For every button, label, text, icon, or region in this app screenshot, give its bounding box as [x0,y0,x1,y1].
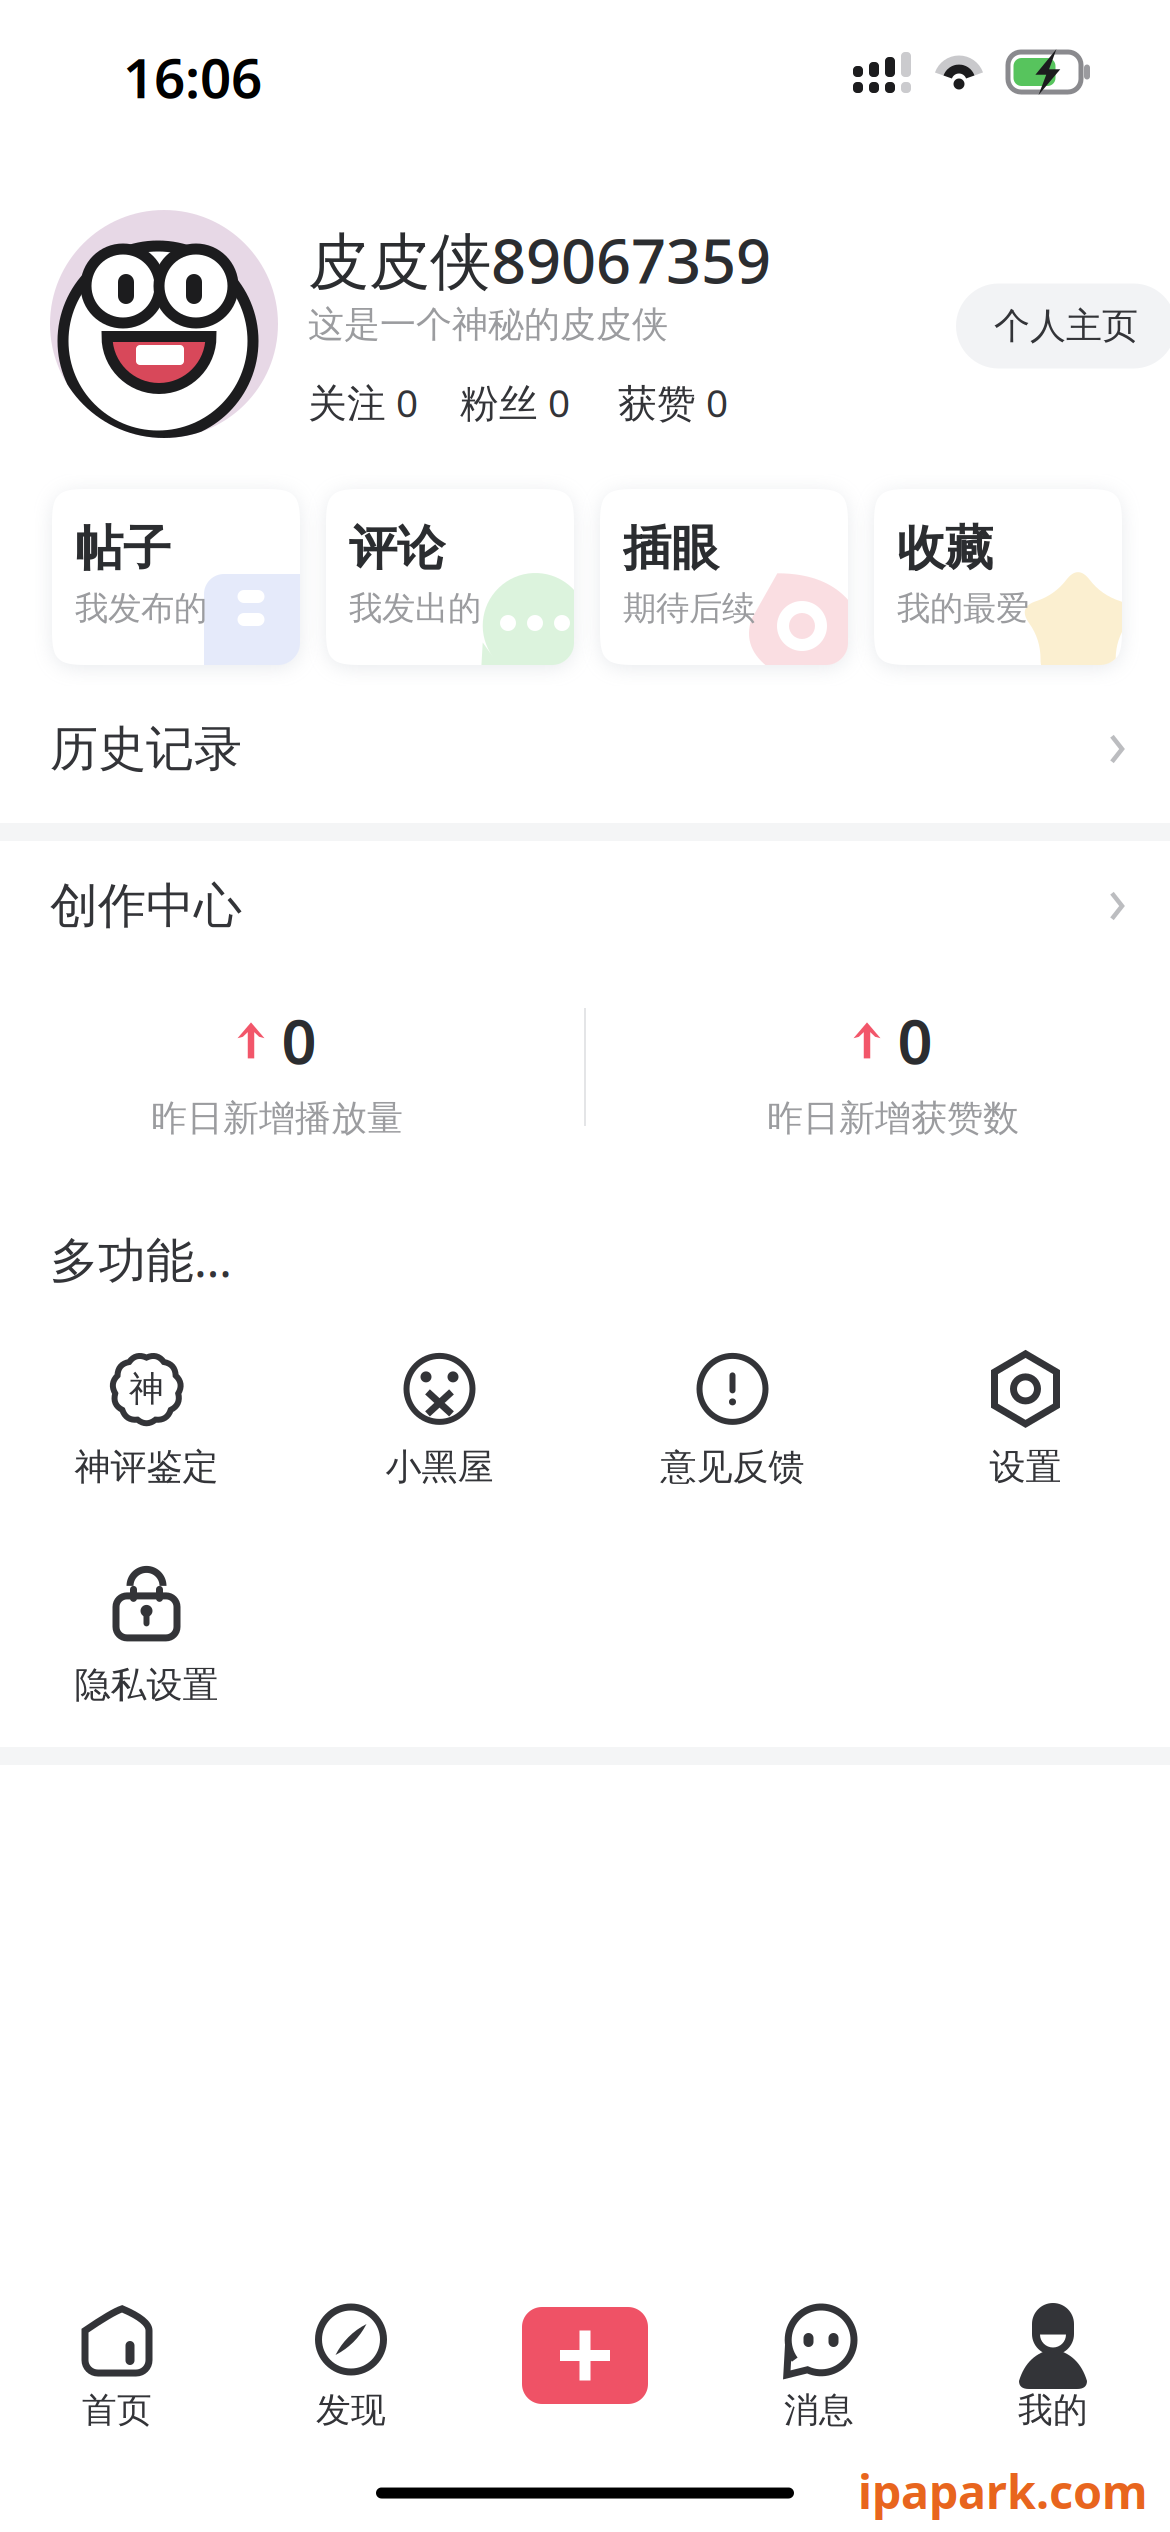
button[interactable]: 发布 [468,2306,702,2466]
staticText: ipapark.com [858,2460,1148,2522]
staticText: 插眼 [623,519,719,578]
button[interactable]: 消息 [702,2306,936,2466]
staticText: 神评鉴定 [74,1445,218,1489]
button[interactable]: 隐私设置 [0,1565,293,1707]
button[interactable]: 创作中心 [0,846,1170,966]
staticText: 我发出的 [349,588,481,629]
staticText: 设置 [989,1445,1061,1489]
button[interactable]: 意见反馈 [586,1347,879,1489]
staticText: 个人主页 [994,304,1138,348]
button[interactable]: 设置 [879,1347,1170,1489]
staticText: 0 [897,1000,932,1081]
staticText: 昨日新增获赞数 [767,1096,1019,1140]
button[interactable]: 神 [0,1347,293,1489]
staticText: 皮皮侠89067359 [308,219,771,300]
button[interactable]: 帖子 [52,489,300,665]
staticText: 首页 [82,2389,152,2432]
staticText: 消息 [784,2389,854,2432]
staticText: 关注 0 [308,377,418,428]
button[interactable]: 个人主页 [956,283,1170,368]
staticText: 期待后续 [623,588,755,629]
button[interactable]: 首页 [0,2306,234,2466]
staticText: 0 [281,1000,316,1081]
staticText: 这是一个神秘的皮皮侠 [308,302,668,347]
button[interactable]: 我的 [936,2306,1170,2466]
staticText: 隐私设置 [74,1663,218,1707]
staticText: 多功能… [50,1227,232,1291]
staticText: 我的最爱 [897,588,1029,629]
button[interactable]: 小黑屋 [293,1347,586,1489]
staticText: 收藏 [897,519,993,578]
staticText: 帖子 [75,519,171,578]
button[interactable]: 评论 [326,489,574,665]
staticText: 16:06 [123,41,262,113]
staticText: 昨日新增播放量 [151,1096,403,1140]
staticText: 小黑屋 [385,1445,493,1489]
staticText: 神 [129,1368,164,1410]
button[interactable]: 收藏 [874,489,1122,665]
staticText: 创作中心 [50,876,242,935]
staticText: 发现 [316,2389,386,2432]
staticText: 我发布的 [75,588,207,629]
staticText: 获赞 0 [618,377,728,428]
staticText: 历史记录 [50,719,242,778]
staticText: 我的 [1018,2389,1088,2432]
button[interactable]: 发现 [234,2306,468,2466]
staticText: 粉丝 0 [460,377,570,428]
button[interactable]: 插眼 [600,489,848,665]
button[interactable]: 历史记录 [0,689,1170,809]
staticText: 评论 [349,519,445,578]
staticText: 意见反馈 [660,1445,804,1489]
